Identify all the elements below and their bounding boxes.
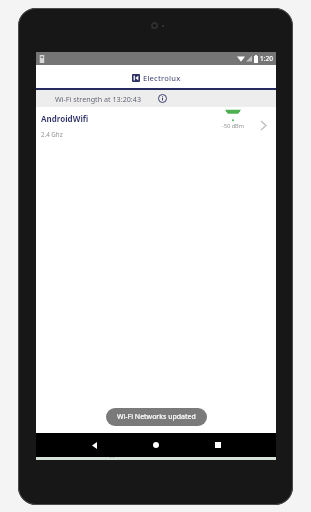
button[interactable]: Appliances [92,438,148,460]
button[interactable]: Information [156,92,169,105]
button[interactable]: Wi-Fi Networks updated [106,408,207,426]
staticText: 1:20 [260,54,273,63]
staticText: Networks [180,451,205,458]
button[interactable]: Back [86,437,102,453]
button[interactable]: AndroidWifi [36,107,276,143]
staticText: -50 dBm [222,122,244,130]
other: Wi-Fi signal strength [225,109,241,121]
button[interactable]: Recent apps [210,437,226,453]
button[interactable]: Wi-Fi strength at 13:20:43 [36,90,276,107]
staticText: Appliances [106,451,134,458]
button[interactable]: Open network details [256,118,270,132]
staticText: 2.4 Ghz [41,130,63,138]
staticText: AndroidWifi [41,113,89,124]
button[interactable]: Home [148,437,164,453]
staticText: Electrolux [143,73,181,83]
staticText: Wi-Fi strength at 13:20:43 [55,94,142,104]
staticText: Wi-Fi Networks updated [117,412,196,422]
button[interactable]: Networks [164,438,220,460]
